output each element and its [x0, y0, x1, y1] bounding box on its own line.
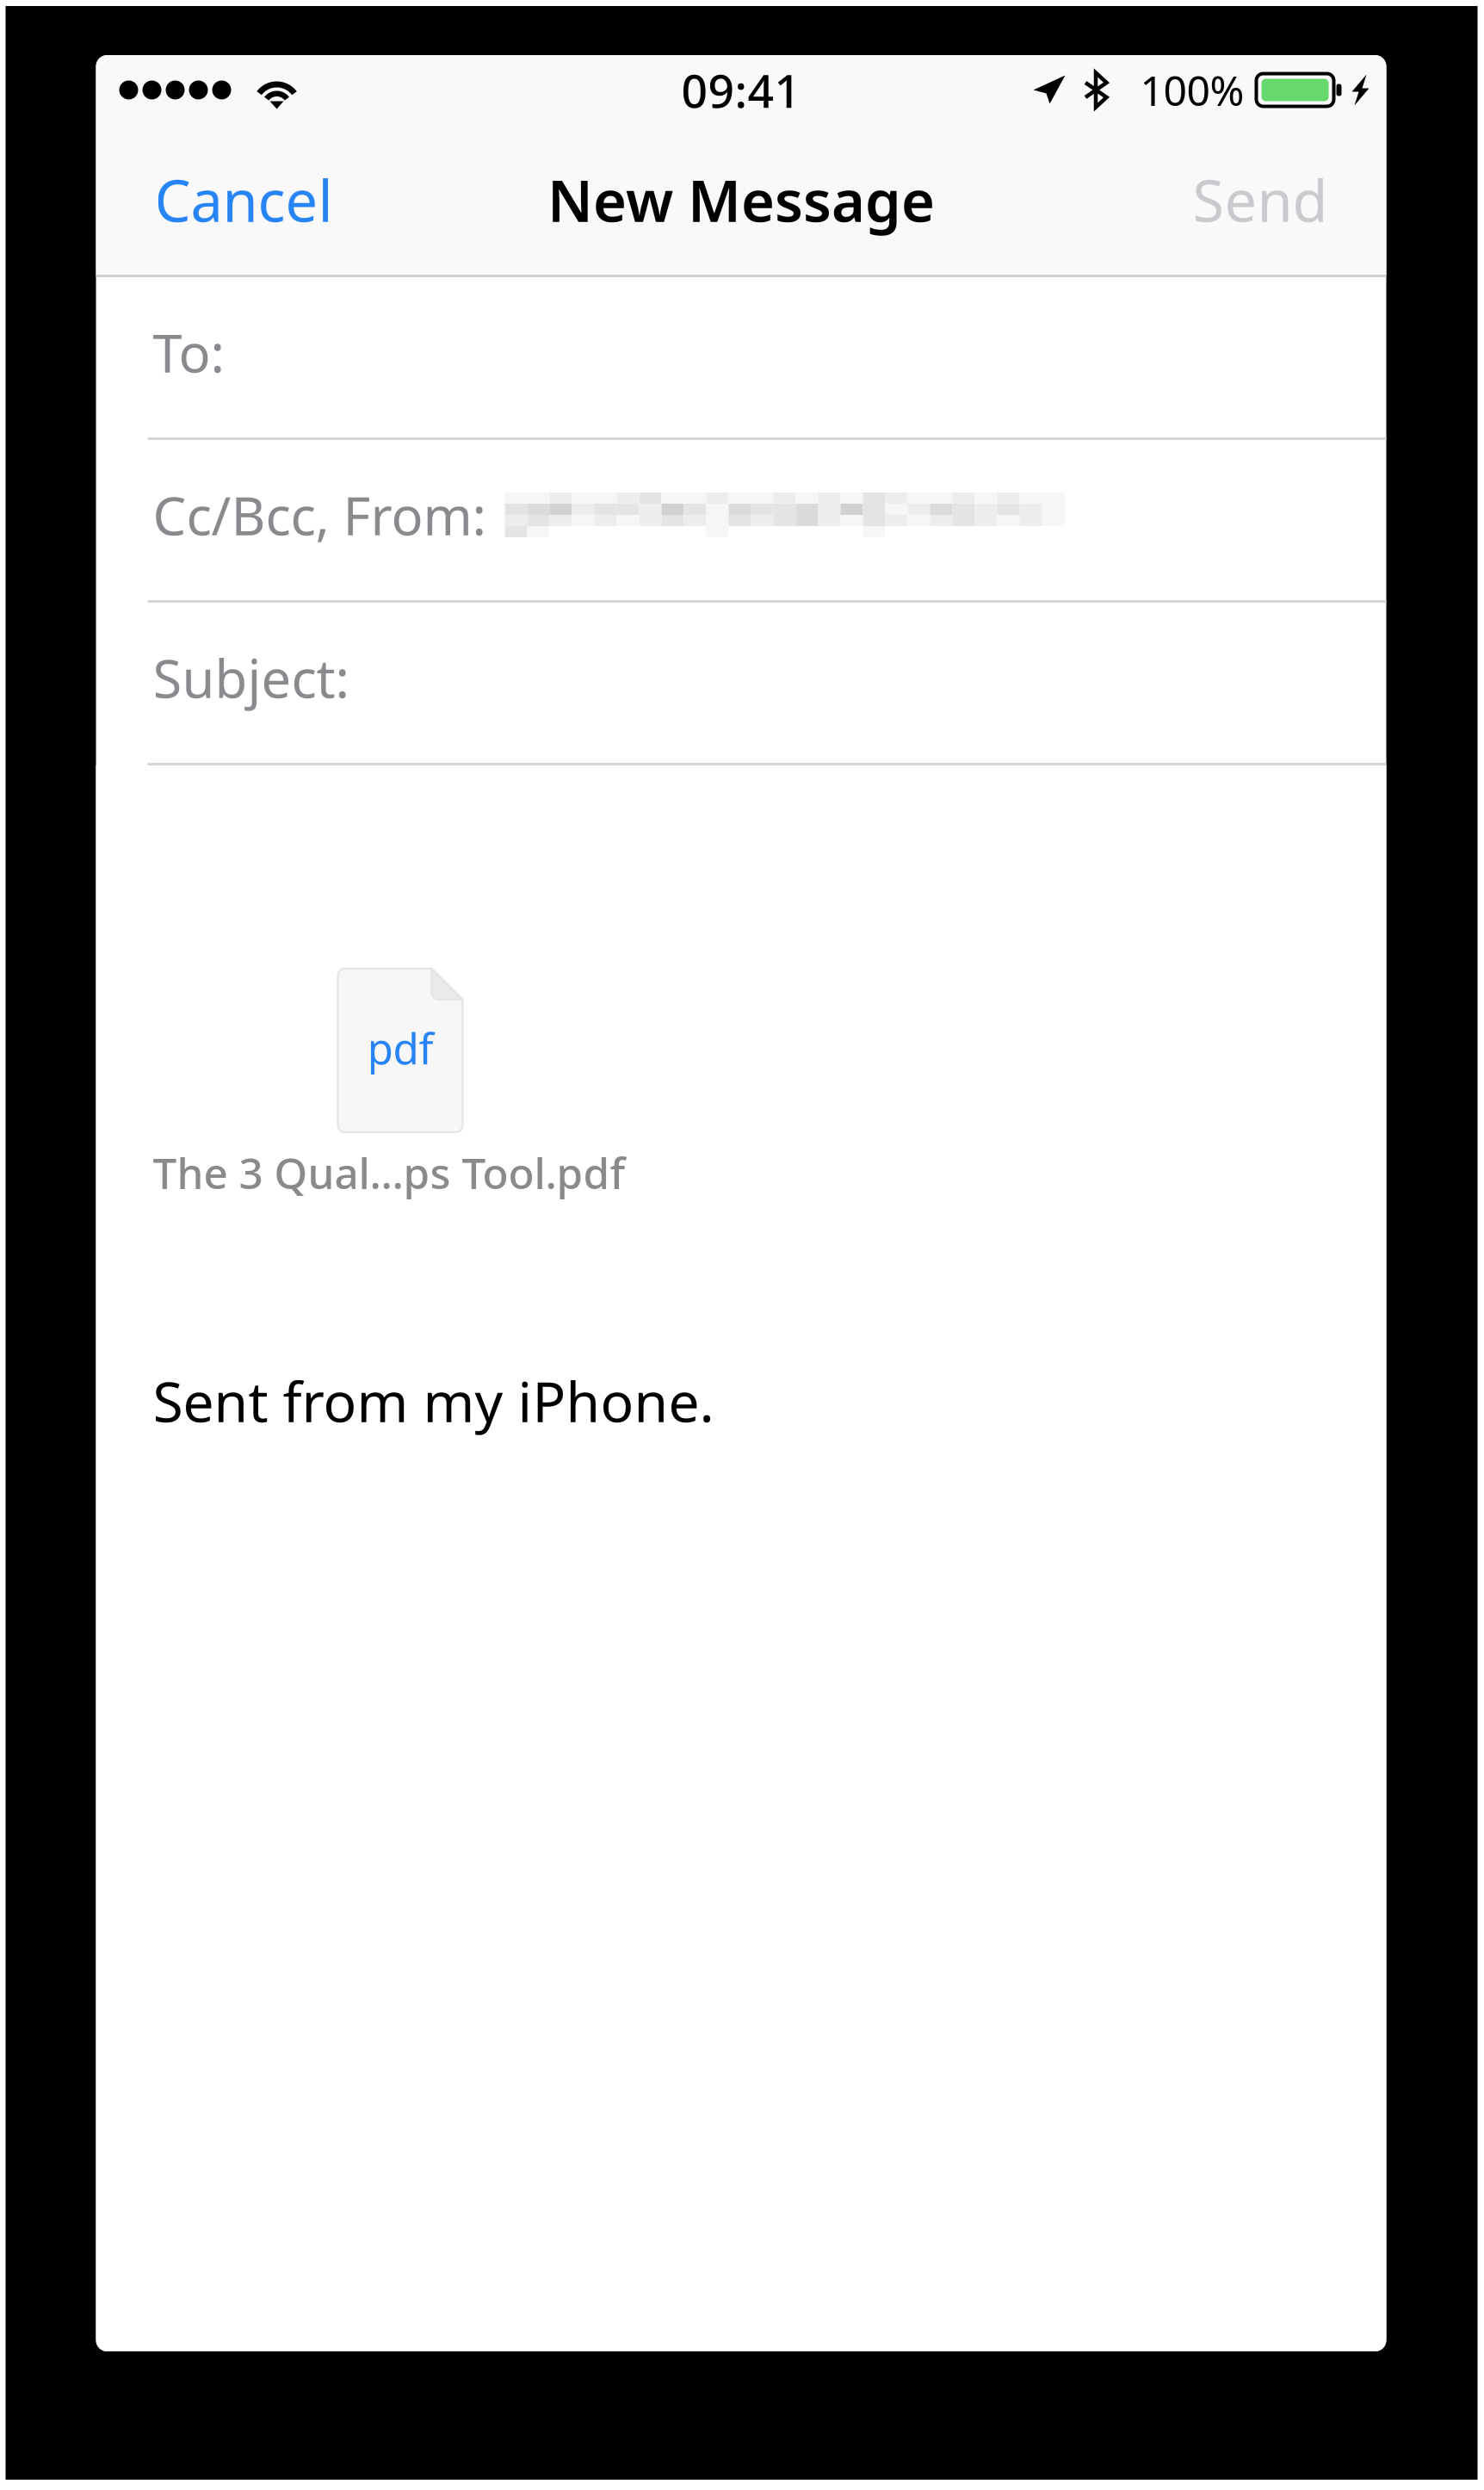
staticText: pdf [367, 1020, 433, 1076]
staticText: To: [153, 317, 224, 387]
staticText: Sent from my iPhone. [153, 1364, 714, 1437]
staticText: Cancel [155, 162, 333, 238]
staticText: Subject: [153, 643, 349, 713]
button[interactable]: Send [1174, 125, 1347, 275]
staticText: Cc/Bcc, From: [153, 480, 486, 550]
button[interactable]: Cancel [136, 125, 352, 275]
staticText: Send [1193, 162, 1328, 238]
staticText: 09:41 [681, 59, 801, 120]
staticText: 100% [1140, 63, 1244, 117]
staticText: The 3 Qual...ps Tool.pdf [153, 1144, 625, 1201]
staticText: New Message [547, 162, 935, 238]
